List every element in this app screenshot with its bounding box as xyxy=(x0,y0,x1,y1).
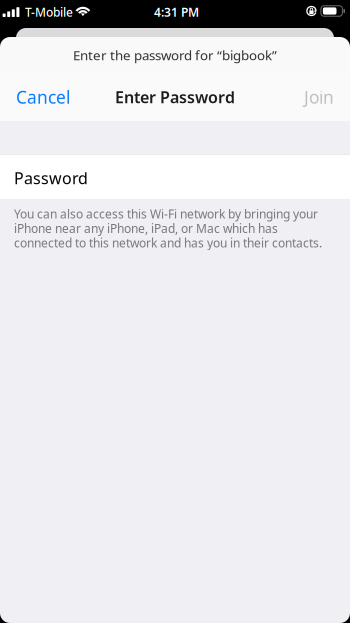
staticText: Join xyxy=(304,85,334,108)
staticText: Cancel xyxy=(16,85,70,108)
staticText: You can also access this Wi-Fi network b… xyxy=(14,206,318,222)
button[interactable]: Password xyxy=(0,154,350,200)
staticText: T-Mobile xyxy=(25,4,73,20)
staticText: Password xyxy=(14,167,88,189)
staticText: Enter Password xyxy=(115,86,235,108)
staticText: 4:31 PM xyxy=(154,4,199,20)
staticText: Enter the password for “bigbook” xyxy=(73,46,277,64)
button[interactable]: Join xyxy=(288,73,350,121)
button[interactable]: Cancel xyxy=(0,73,86,121)
staticText: iPhone near any iPhone, iPad, or Mac whi… xyxy=(14,220,278,236)
staticText: connected to this network and has you in… xyxy=(14,235,322,251)
